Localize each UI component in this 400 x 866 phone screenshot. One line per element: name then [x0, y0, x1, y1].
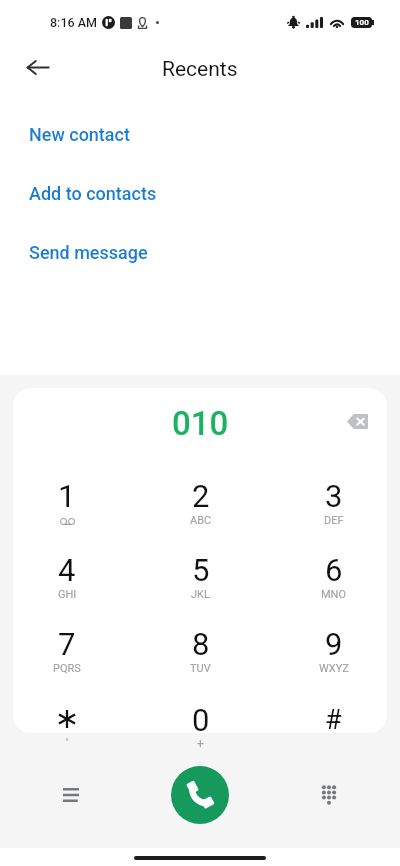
- button[interactable]: #: [267, 689, 400, 763]
- staticText: 6: [325, 552, 343, 588]
- button[interactable]: Call: [171, 766, 229, 824]
- staticText: ABC: [190, 514, 212, 527]
- button[interactable]: Backspace: [337, 401, 377, 441]
- button[interactable]: 5: [134, 539, 267, 613]
- staticText: 0: [192, 702, 210, 738]
- staticText: WXYZ: [319, 662, 349, 675]
- staticText: Send message: [29, 242, 148, 263]
- staticText: 2: [192, 478, 210, 514]
- button[interactable]: 0: [134, 689, 267, 763]
- staticText: 1: [58, 478, 76, 514]
- staticText: New contact: [29, 124, 130, 145]
- button[interactable]: Dialpad: [307, 773, 351, 817]
- staticText: 8: [192, 626, 210, 662]
- button[interactable]: Add to contacts: [0, 164, 400, 223]
- staticText: MNO: [321, 588, 347, 601]
- staticText: #: [325, 704, 342, 736]
- staticText: 9: [325, 626, 343, 662]
- button[interactable]: Back: [18, 47, 58, 87]
- staticText: GHI: [58, 588, 77, 601]
- staticText: 4: [58, 552, 76, 588]
- button[interactable]: New contact: [0, 105, 400, 164]
- button[interactable]: ': [0, 689, 134, 763]
- staticText: ': [66, 737, 69, 751]
- button[interactable]: 8: [134, 613, 267, 687]
- staticText: DEF: [324, 514, 344, 527]
- staticText: 8:16 AM: [50, 15, 97, 30]
- button[interactable]: 6: [267, 539, 400, 613]
- staticText: 3: [325, 478, 343, 514]
- button[interactable]: 7: [0, 613, 134, 687]
- staticText: 7: [58, 626, 76, 662]
- button[interactable]: 4: [0, 539, 134, 613]
- staticText: TUV: [190, 662, 211, 675]
- staticText: 5: [192, 552, 210, 588]
- button[interactable]: 2: [134, 465, 267, 539]
- staticText: JKL: [191, 588, 210, 601]
- staticText: Add to contacts: [29, 183, 157, 204]
- staticText: +: [197, 737, 204, 751]
- staticText: Recents: [162, 57, 238, 82]
- button[interactable]: Menu: [49, 773, 93, 817]
- button[interactable]: Send message: [0, 223, 400, 282]
- staticText: 100: [355, 18, 369, 27]
- staticText: 010: [172, 404, 229, 443]
- button[interactable]: 9: [267, 613, 400, 687]
- button[interactable]: 3: [267, 465, 400, 539]
- button[interactable]: 1: [0, 465, 134, 539]
- staticText: PQRS: [53, 662, 81, 675]
